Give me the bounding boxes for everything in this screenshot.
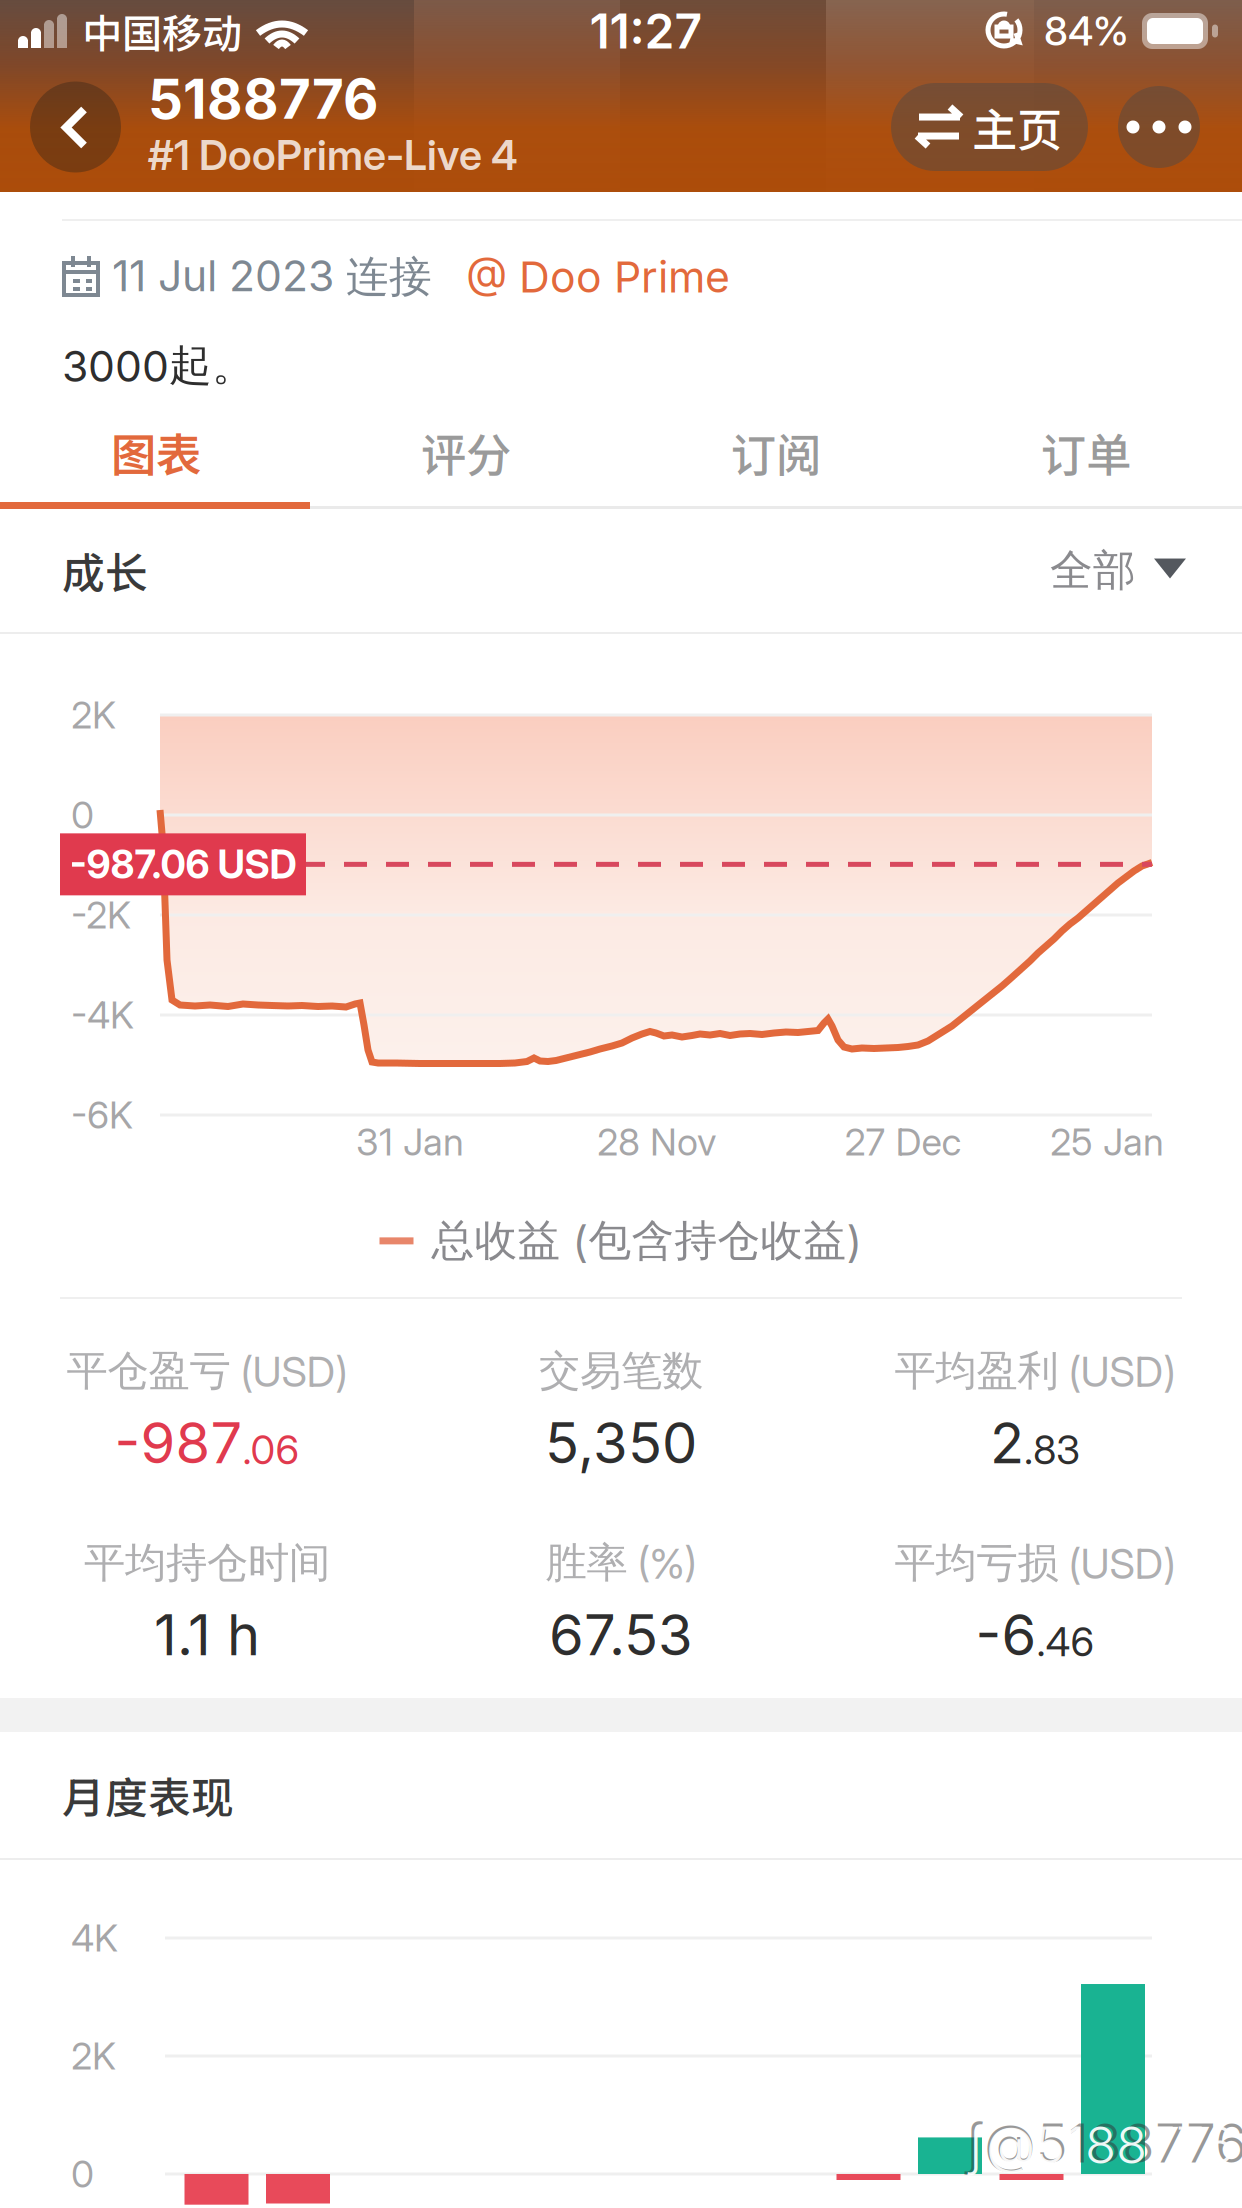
staticText: -6 bbox=[975, 1601, 1036, 1669]
staticText: .83 bbox=[1024, 1425, 1080, 1474]
button[interactable]: 订单 bbox=[931, 401, 1241, 503]
button[interactable]: 主页 bbox=[891, 83, 1088, 171]
staticText: @ Doo Prime bbox=[466, 251, 730, 303]
staticText: .46 bbox=[1036, 1617, 1094, 1666]
staticText: 0 bbox=[71, 792, 94, 838]
button[interactable]: 订阅 bbox=[621, 401, 931, 503]
staticText: 5,350 bbox=[545, 1409, 697, 1477]
staticText: #1 DooPrime-Live 4 bbox=[148, 130, 518, 180]
staticText: 总收益 (包含持仓收益) bbox=[431, 1214, 862, 1268]
staticText: 成长 bbox=[62, 540, 148, 601]
staticText: 67.53 bbox=[549, 1601, 693, 1669]
staticText: -4K bbox=[71, 992, 134, 1038]
staticText: 订阅 bbox=[731, 419, 821, 485]
staticText: .06 bbox=[242, 1425, 299, 1474]
staticText: 11:27 bbox=[589, 2, 702, 60]
staticText: 全部 bbox=[1050, 544, 1136, 597]
staticText: 27 Dec bbox=[844, 1119, 961, 1165]
staticText: -987.06 USD bbox=[69, 841, 296, 888]
staticText: 28 Nov bbox=[597, 1119, 717, 1165]
staticText: 2K bbox=[71, 2033, 116, 2079]
staticText: 4K bbox=[71, 1915, 118, 1961]
staticText: 5188776 bbox=[148, 66, 379, 132]
staticText: 平仓盈亏 (USD) bbox=[66, 1345, 347, 1397]
staticText: 胜率 (%) bbox=[545, 1537, 696, 1589]
staticText: 25 Jan bbox=[1050, 1119, 1164, 1165]
button[interactable]: 评分 bbox=[311, 401, 621, 503]
staticText: 月度表现 bbox=[62, 1764, 234, 1826]
staticText: -2K bbox=[71, 892, 131, 938]
staticText: 1.1 h bbox=[154, 1601, 260, 1669]
button[interactable]: 图表 bbox=[1, 401, 311, 503]
staticText: 订单 bbox=[1041, 419, 1131, 485]
button[interactable]: 全部 bbox=[1050, 544, 1186, 597]
staticText: 3000起。 bbox=[62, 339, 255, 392]
staticText: -6K bbox=[71, 1092, 133, 1138]
staticText: 交易笔数 bbox=[539, 1345, 703, 1397]
staticText: 2K bbox=[71, 692, 116, 738]
staticText: 平均亏损 (USD) bbox=[894, 1537, 1175, 1589]
staticText: 主页 bbox=[972, 94, 1062, 160]
staticText: 2 bbox=[990, 1409, 1024, 1477]
staticText: -987 bbox=[114, 1409, 242, 1477]
staticText: 84% bbox=[1044, 7, 1129, 55]
button[interactable]: Back bbox=[30, 81, 121, 172]
staticText: 平均持仓时间 bbox=[84, 1537, 330, 1589]
button[interactable]: More bbox=[1118, 86, 1200, 168]
staticText: 图表 bbox=[111, 419, 201, 485]
staticText: 11 Jul 2023 连接 bbox=[112, 250, 432, 304]
staticText: 平均盈利 (USD) bbox=[894, 1345, 1175, 1397]
staticText: 评分 bbox=[421, 419, 511, 485]
staticText: ʃ@5188776 bbox=[965, 2111, 1242, 2175]
staticText: 0 bbox=[71, 2151, 94, 2197]
staticText: 中国移动 bbox=[82, 2, 242, 60]
staticText: 31 Jan bbox=[356, 1119, 464, 1165]
staticText: ʃ@5188776 bbox=[968, 2114, 1234, 2176]
